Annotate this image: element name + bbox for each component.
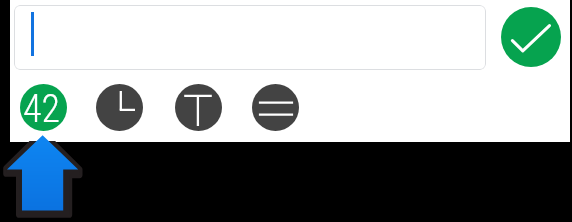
button[interactable]: Math — [252, 84, 299, 131]
button[interactable]: Date and time — [96, 84, 143, 131]
button[interactable] — [14, 5, 486, 70]
staticText: 42 — [23, 87, 60, 131]
button[interactable]: Confirm — [501, 7, 561, 67]
button[interactable]: Number — [20, 84, 67, 131]
button[interactable]: Text — [175, 84, 222, 131]
